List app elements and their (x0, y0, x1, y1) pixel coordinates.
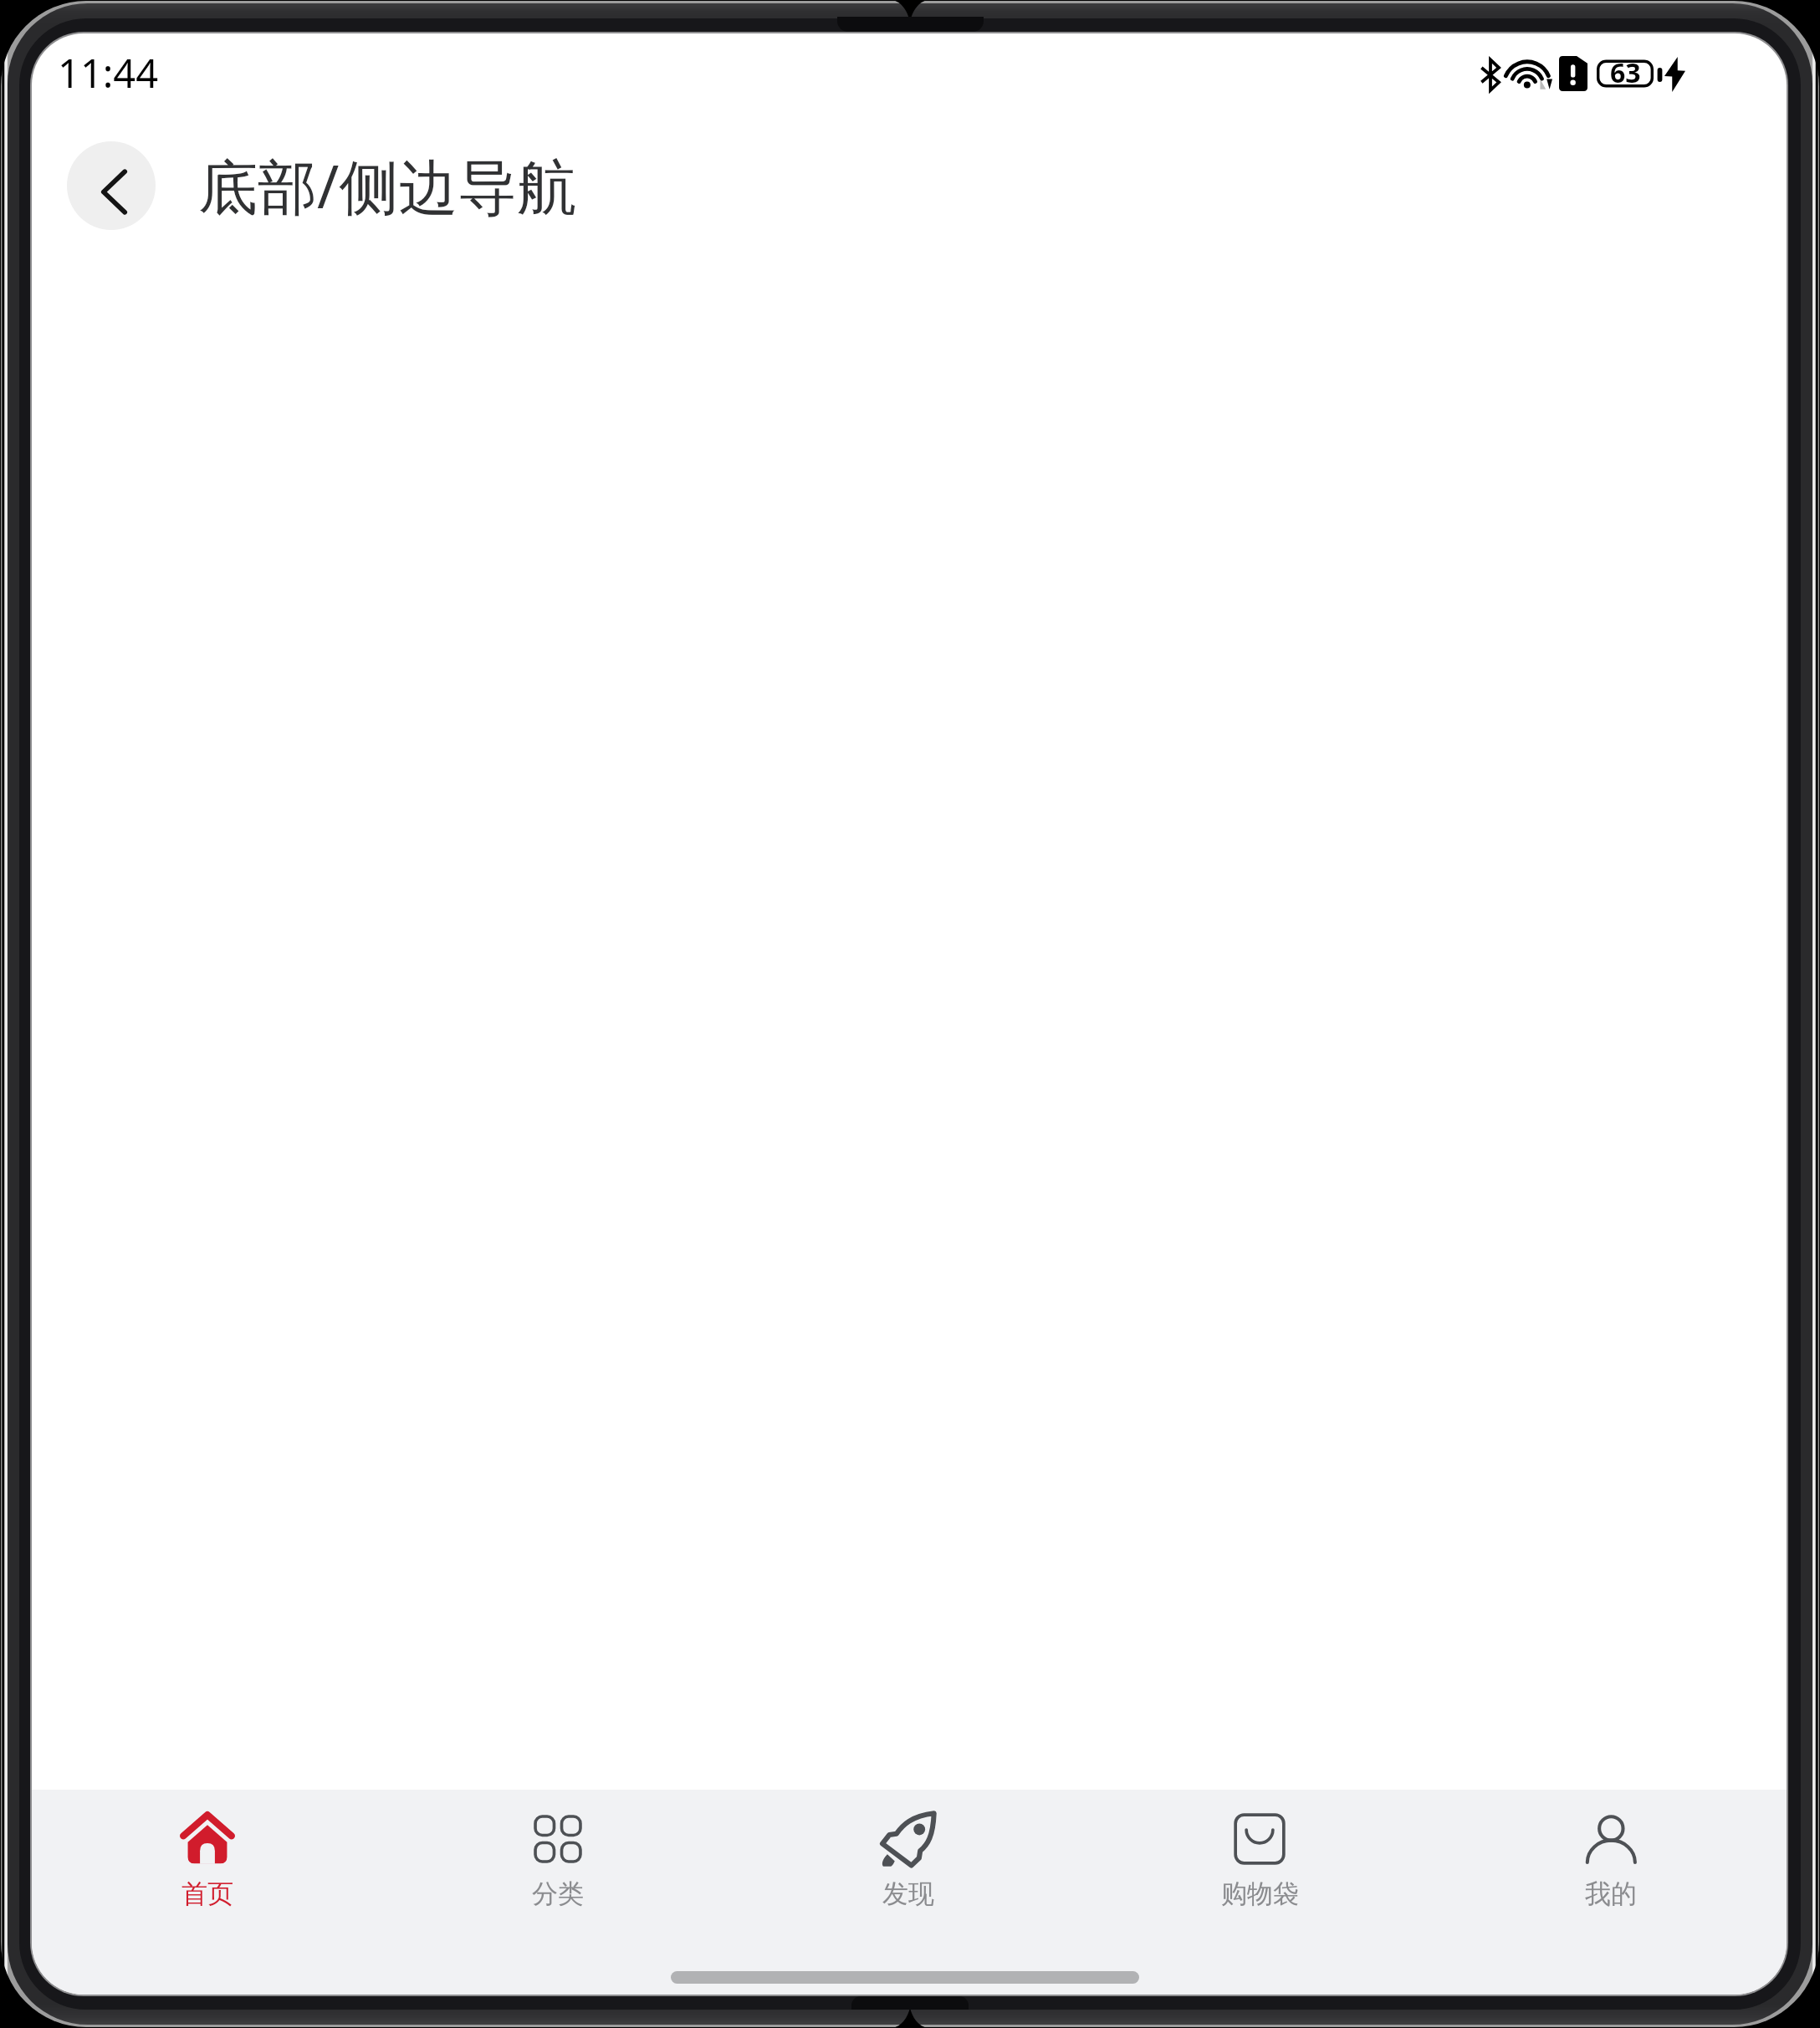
staticText: 我的 (1585, 1877, 1637, 1910)
button[interactable]: 发现 (733, 1790, 1084, 1942)
staticText: 底部/侧边导航 (198, 145, 577, 226)
staticText: 11:44 (58, 46, 159, 100)
button[interactable]: 购物袋 (1084, 1790, 1435, 1942)
staticText: 发现 (882, 1877, 934, 1910)
staticText: 购物袋 (1221, 1877, 1299, 1910)
staticText: 首页 (181, 1877, 233, 1910)
staticText: 63 (1610, 54, 1641, 88)
button[interactable]: 首页 (32, 1790, 382, 1942)
staticText: 分类 (532, 1877, 584, 1910)
button[interactable]: 分类 (382, 1790, 733, 1942)
button[interactable]: 我的 (1435, 1790, 1787, 1942)
button[interactable]: Back (67, 141, 156, 230)
